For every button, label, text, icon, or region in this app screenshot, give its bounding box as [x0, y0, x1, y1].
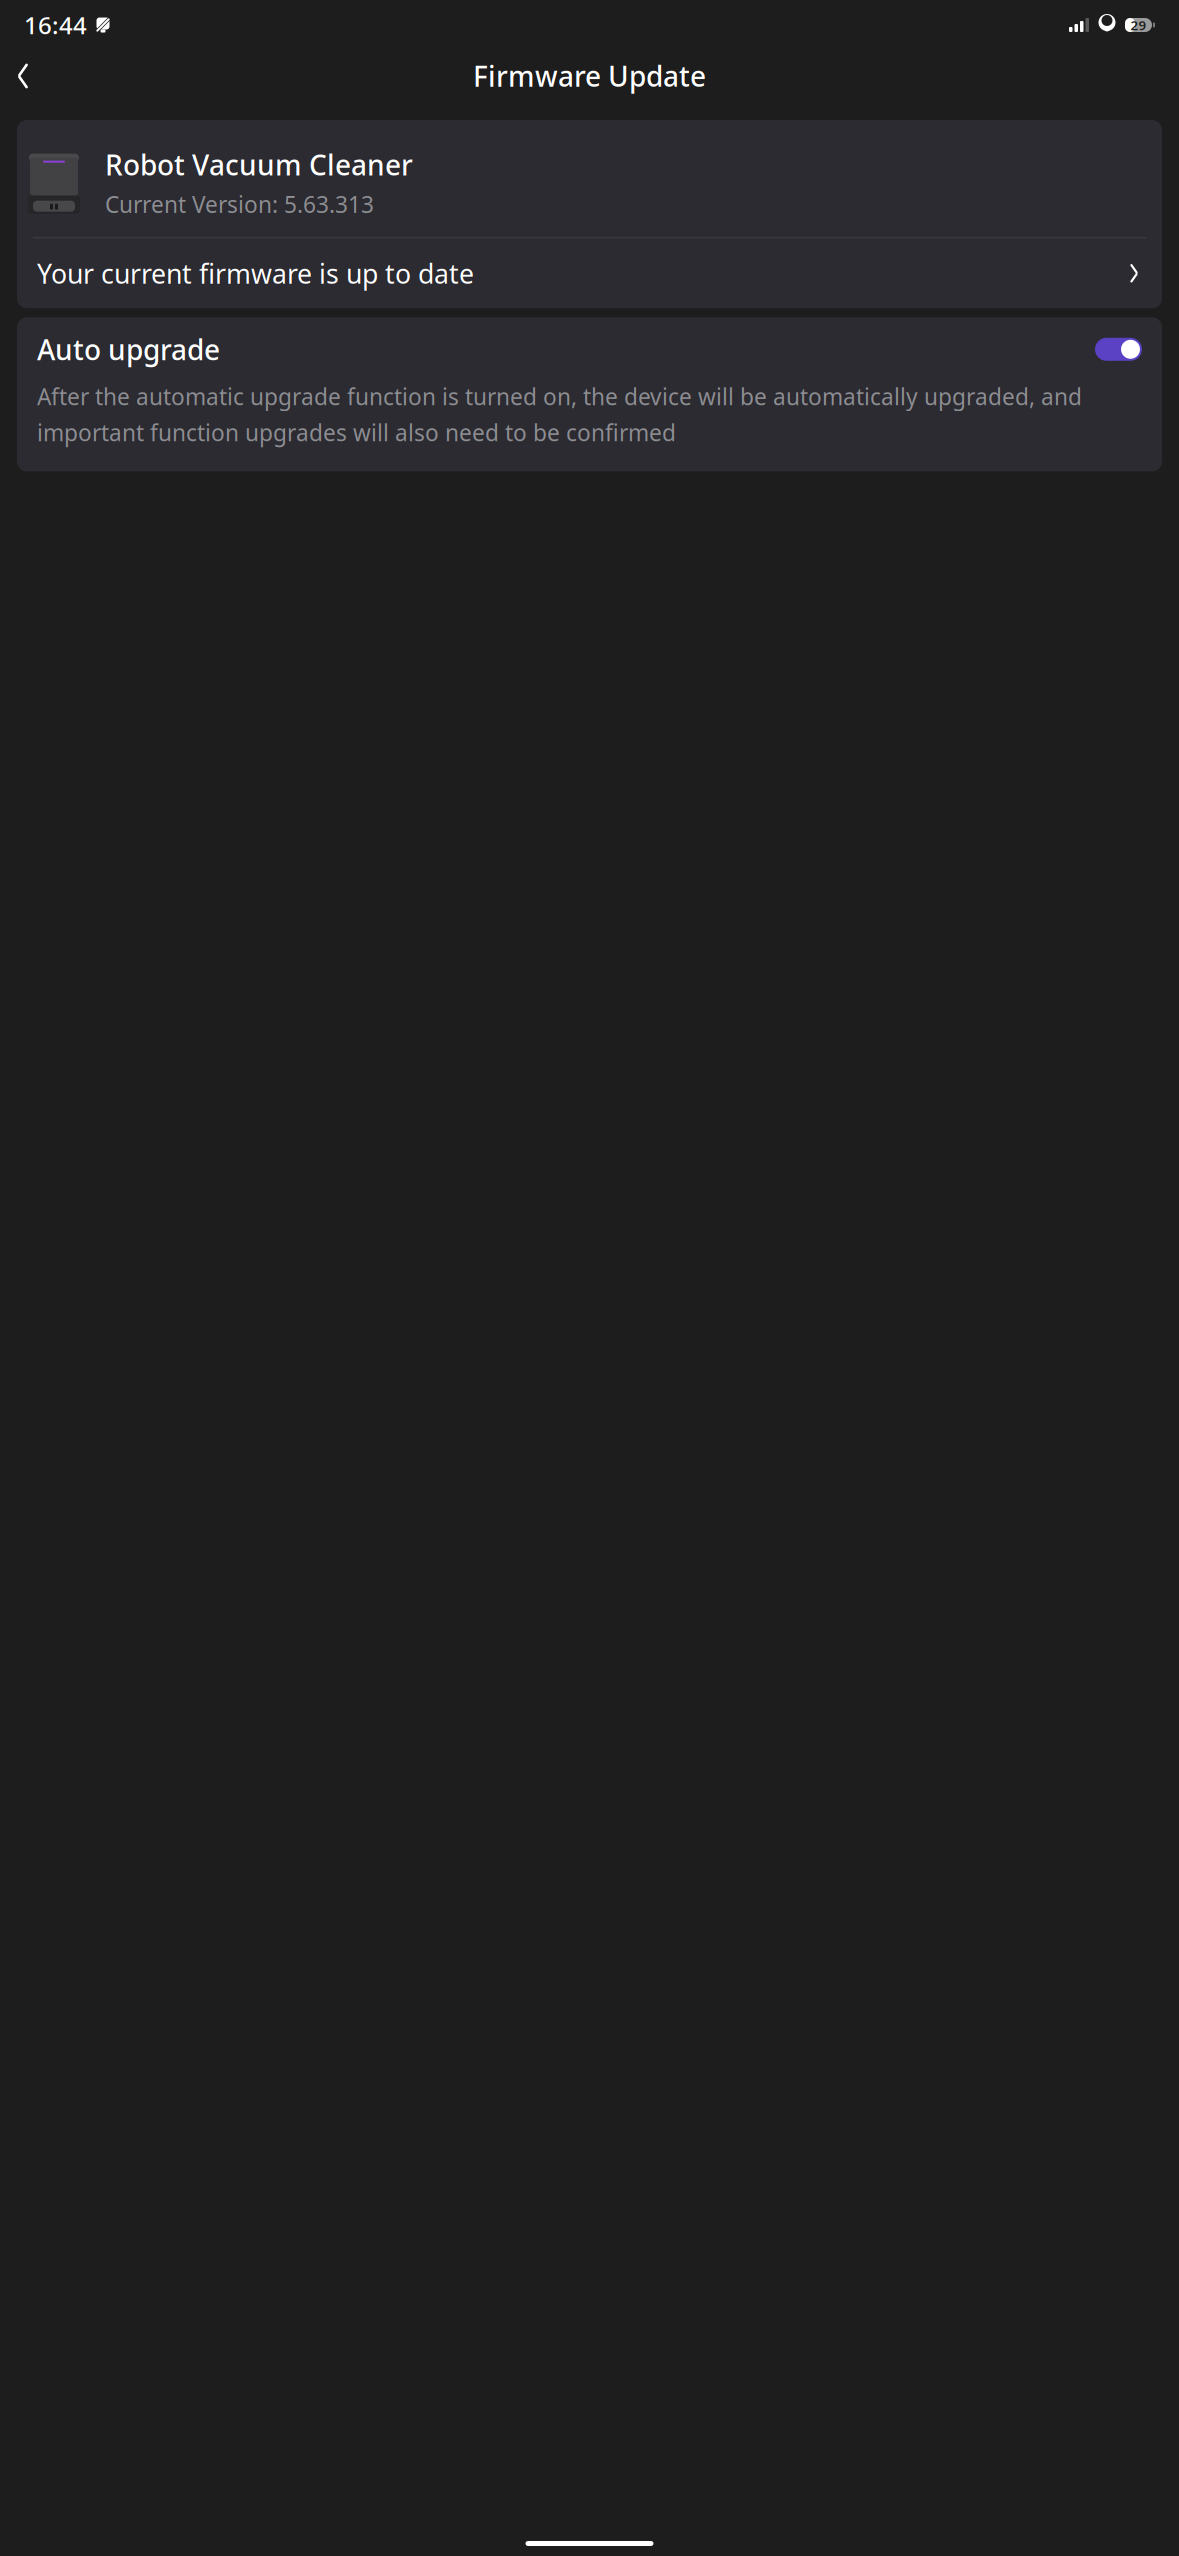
staticText: 16:44 — [24, 9, 87, 41]
staticText: Auto upgrade — [37, 331, 220, 368]
staticText: Robot Vacuum Cleaner — [105, 146, 413, 183]
button[interactable]: Back — [0, 53, 46, 99]
button[interactable]: Your current firmware is up to date — [17, 238, 1162, 308]
button[interactable]: Auto upgrade — [17, 317, 1162, 381]
staticText: Current Version: 5.63.313 — [105, 189, 374, 219]
staticText: Your current firmware is up to date — [37, 256, 474, 291]
staticText: After the automatic upgrade function is … — [37, 381, 1082, 447]
staticText: 29 — [1130, 16, 1146, 34]
staticText: Firmware Update — [473, 57, 706, 95]
